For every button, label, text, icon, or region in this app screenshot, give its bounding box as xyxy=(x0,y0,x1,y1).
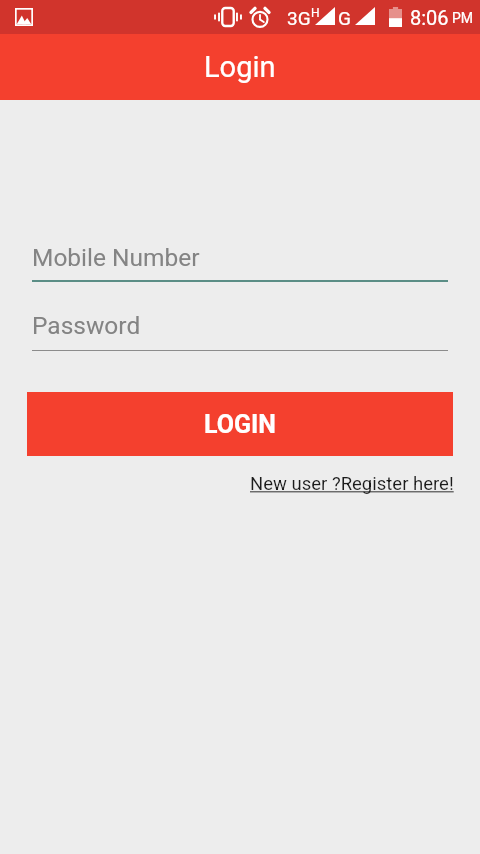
staticText: New user ?Register here! xyxy=(250,473,454,495)
button[interactable]: Password xyxy=(32,300,448,351)
other: Vibrate mode xyxy=(215,8,241,26)
staticText: 3G xyxy=(287,7,311,29)
button[interactable]: Mobile Number xyxy=(32,231,448,282)
other: Alarm set xyxy=(250,8,270,27)
other: Battery xyxy=(389,7,402,27)
staticText: 8:06 xyxy=(410,6,449,29)
staticText: LOGIN xyxy=(204,410,276,439)
other: Mobile signal xyxy=(315,7,335,25)
staticText: Mobile Number xyxy=(32,243,200,272)
button[interactable]: LOGIN xyxy=(27,392,453,456)
staticText: Login xyxy=(204,50,276,84)
staticText: Password xyxy=(32,311,141,340)
button[interactable]: New user ?Register here! xyxy=(250,473,454,495)
staticText: PM xyxy=(452,10,474,26)
staticText: H xyxy=(311,6,320,20)
other: Screenshot captured xyxy=(15,8,33,26)
other: Mobile signal xyxy=(355,7,375,25)
staticText: G xyxy=(338,7,351,29)
